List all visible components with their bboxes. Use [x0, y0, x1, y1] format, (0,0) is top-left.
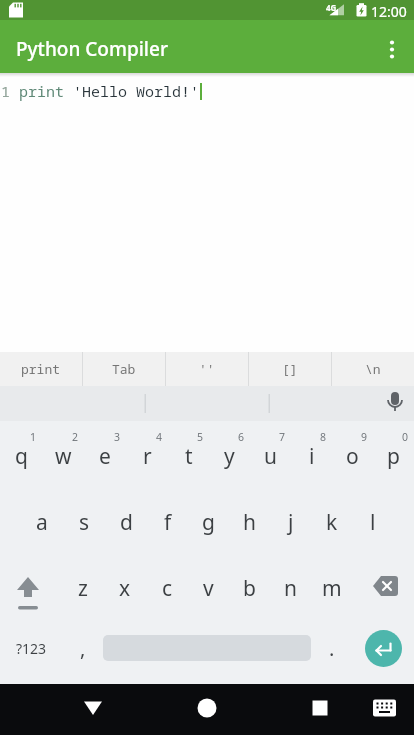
button[interactable]: i: [291, 421, 332, 487]
staticText: 0: [402, 430, 409, 444]
staticText: 1 print 'Hello World!': [1, 81, 200, 101]
staticText: z: [78, 574, 88, 603]
button[interactable]: \n: [332, 352, 414, 386]
staticText: 4G: [326, 2, 337, 13]
button[interactable]: g: [188, 487, 229, 553]
staticText: ?123: [16, 639, 47, 658]
button[interactable]: a: [21, 487, 63, 553]
button[interactable]: k: [311, 487, 352, 553]
button[interactable]: [0, 553, 62, 619]
button[interactable]: v: [188, 553, 229, 619]
staticText: 4: [156, 430, 163, 444]
button[interactable]: w: [42, 421, 84, 487]
staticText: a: [36, 508, 48, 537]
button[interactable]: u: [250, 421, 291, 487]
staticText: g: [202, 508, 215, 537]
button[interactable]: p: [373, 421, 414, 487]
staticText: u: [264, 442, 277, 471]
button[interactable]: Tab: [83, 352, 165, 386]
button[interactable]: []: [249, 352, 331, 386]
staticText: t: [185, 442, 193, 471]
staticText: j: [288, 508, 294, 537]
button[interactable]: [138, 684, 276, 735]
staticText: c: [162, 574, 173, 603]
staticText: 5: [197, 430, 204, 444]
button[interactable]: e: [84, 421, 126, 487]
button[interactable]: print: [0, 352, 82, 386]
staticText: print: [21, 360, 61, 378]
button[interactable]: [352, 619, 414, 677]
staticText: b: [243, 574, 256, 603]
button[interactable]: s: [63, 487, 105, 553]
button[interactable]: m: [311, 553, 352, 619]
staticText: l: [370, 508, 376, 537]
staticText: 12:00: [371, 2, 407, 21]
staticText: y: [224, 442, 235, 471]
button[interactable]: .: [311, 619, 352, 677]
staticText: e: [99, 442, 111, 471]
button[interactable]: j: [270, 487, 311, 553]
staticText: v: [203, 574, 214, 603]
staticText: h: [243, 508, 256, 537]
staticText: '': [199, 360, 215, 378]
button[interactable]: l: [352, 487, 393, 553]
staticText: p: [387, 442, 400, 471]
button[interactable]: [103, 619, 311, 677]
staticText: f: [164, 508, 172, 537]
staticText: 6: [238, 430, 245, 444]
button[interactable]: q: [0, 421, 42, 487]
staticText: k: [326, 508, 338, 537]
button[interactable]: '': [166, 352, 248, 386]
staticText: m: [322, 574, 342, 603]
staticText: 1: [30, 430, 37, 444]
staticText: w: [55, 442, 72, 471]
staticText: 3: [114, 430, 121, 444]
staticText: \n: [365, 360, 381, 378]
staticText: 9: [361, 430, 368, 444]
button[interactable]: h: [229, 487, 270, 553]
button[interactable]: c: [146, 553, 188, 619]
staticText: r: [143, 442, 152, 471]
button[interactable]: f: [147, 487, 188, 553]
button[interactable]: t: [168, 421, 209, 487]
staticText: s: [79, 508, 90, 537]
staticText: Tab: [112, 360, 136, 378]
button[interactable]: z: [62, 553, 104, 619]
button[interactable]: [276, 684, 414, 735]
button[interactable]: o: [332, 421, 373, 487]
staticText: n: [284, 574, 297, 603]
staticText: o: [346, 442, 359, 471]
staticText: Python Compiler: [16, 36, 168, 62]
button[interactable]: [352, 553, 414, 619]
button[interactable]: x: [104, 553, 146, 619]
staticText: i: [309, 442, 315, 471]
staticText: q: [15, 442, 28, 471]
button[interactable]: b: [229, 553, 270, 619]
button[interactable]: [0, 684, 138, 735]
button[interactable]: ?123: [0, 619, 62, 677]
button[interactable]: d: [105, 487, 147, 553]
button[interactable]: ,: [62, 619, 103, 677]
staticText: .: [329, 635, 335, 662]
staticText: ,: [80, 635, 86, 662]
button[interactable]: [366, 23, 414, 71]
staticText: 7: [279, 430, 286, 444]
staticText: x: [119, 574, 131, 603]
button[interactable]: r: [126, 421, 168, 487]
staticText: []: [282, 360, 298, 378]
button[interactable]: n: [270, 553, 311, 619]
staticText: 2: [72, 430, 79, 444]
button[interactable]: y: [209, 421, 250, 487]
staticText: 8: [320, 430, 327, 444]
staticText: d: [120, 508, 133, 537]
